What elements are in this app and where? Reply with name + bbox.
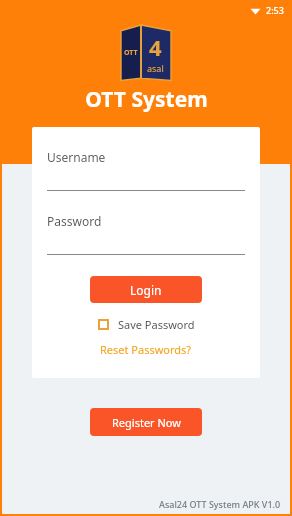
staticText: 2:53	[266, 4, 284, 16]
staticText: OTT System	[85, 85, 208, 114]
button[interactable]: Login	[90, 276, 202, 303]
staticText: asal	[147, 62, 164, 74]
staticText: OTT	[124, 48, 138, 58]
staticText: Asal24 OTT System APK V1.0	[159, 498, 281, 510]
staticText: Password	[47, 213, 102, 229]
staticText: Register Now	[112, 415, 181, 430]
staticText: Save Password	[118, 317, 195, 332]
staticText: 4	[149, 32, 162, 62]
staticText: Username	[47, 149, 106, 165]
button[interactable]: Register Now	[90, 408, 202, 436]
staticText: Login	[130, 282, 162, 298]
button[interactable]: Reset Passwords?	[96, 340, 196, 359]
staticText: Reset Passwords?	[100, 342, 192, 357]
button[interactable]: Save Password	[96, 315, 197, 334]
